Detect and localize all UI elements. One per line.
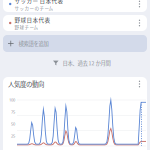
button[interactable]: Chart options — [135, 78, 144, 90]
staticText: 野球チーム — [14, 24, 38, 30]
button[interactable]: 野球日本代表 — [3, 15, 147, 31]
button[interactable]: 検索語を追加 — [3, 35, 147, 52]
staticText: サッカー 日本代表 — [14, 0, 63, 5]
staticText: 100 — [9, 97, 15, 103]
button[interactable]: サッカー 日本代表 — [3, 0, 147, 12]
staticText: 75 — [11, 109, 15, 115]
staticText: 50 — [11, 121, 15, 127]
staticText: サッカーのチーム — [14, 5, 53, 11]
staticText: 野球日本代表 — [14, 16, 50, 24]
staticText: 日本、過去 12 か月間 — [63, 59, 111, 67]
button[interactable]: 日本、過去 12 か月間 — [53, 57, 111, 69]
staticText: 人気度の動向 — [8, 79, 44, 89]
staticText: 検索語を追加 — [19, 40, 49, 47]
staticText: 25 — [11, 133, 15, 139]
